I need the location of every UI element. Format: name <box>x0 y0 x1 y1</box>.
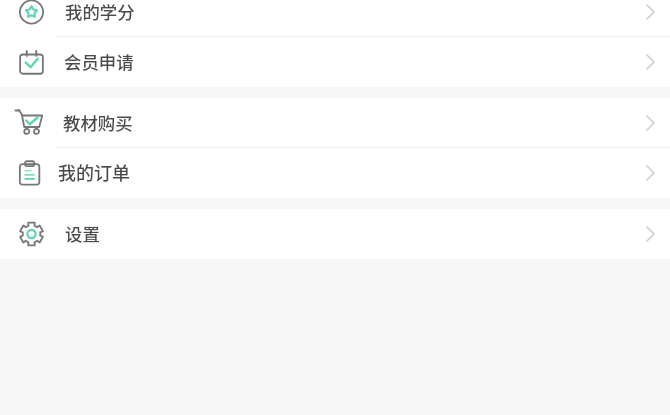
staticText: 我的学分 <box>65 0 135 24</box>
staticText: 设置 <box>65 221 100 246</box>
button[interactable]: 会员申请 <box>0 37 670 87</box>
staticText: 会员申请 <box>64 49 134 74</box>
staticText: 我的订单 <box>58 159 130 185</box>
button[interactable]: 我的订单 <box>0 148 670 198</box>
button[interactable]: 设置 <box>0 209 670 259</box>
button[interactable]: 我的学分 <box>0 0 670 37</box>
button[interactable]: 教材购买 <box>0 98 670 148</box>
staticText: 教材购买 <box>63 110 133 135</box>
